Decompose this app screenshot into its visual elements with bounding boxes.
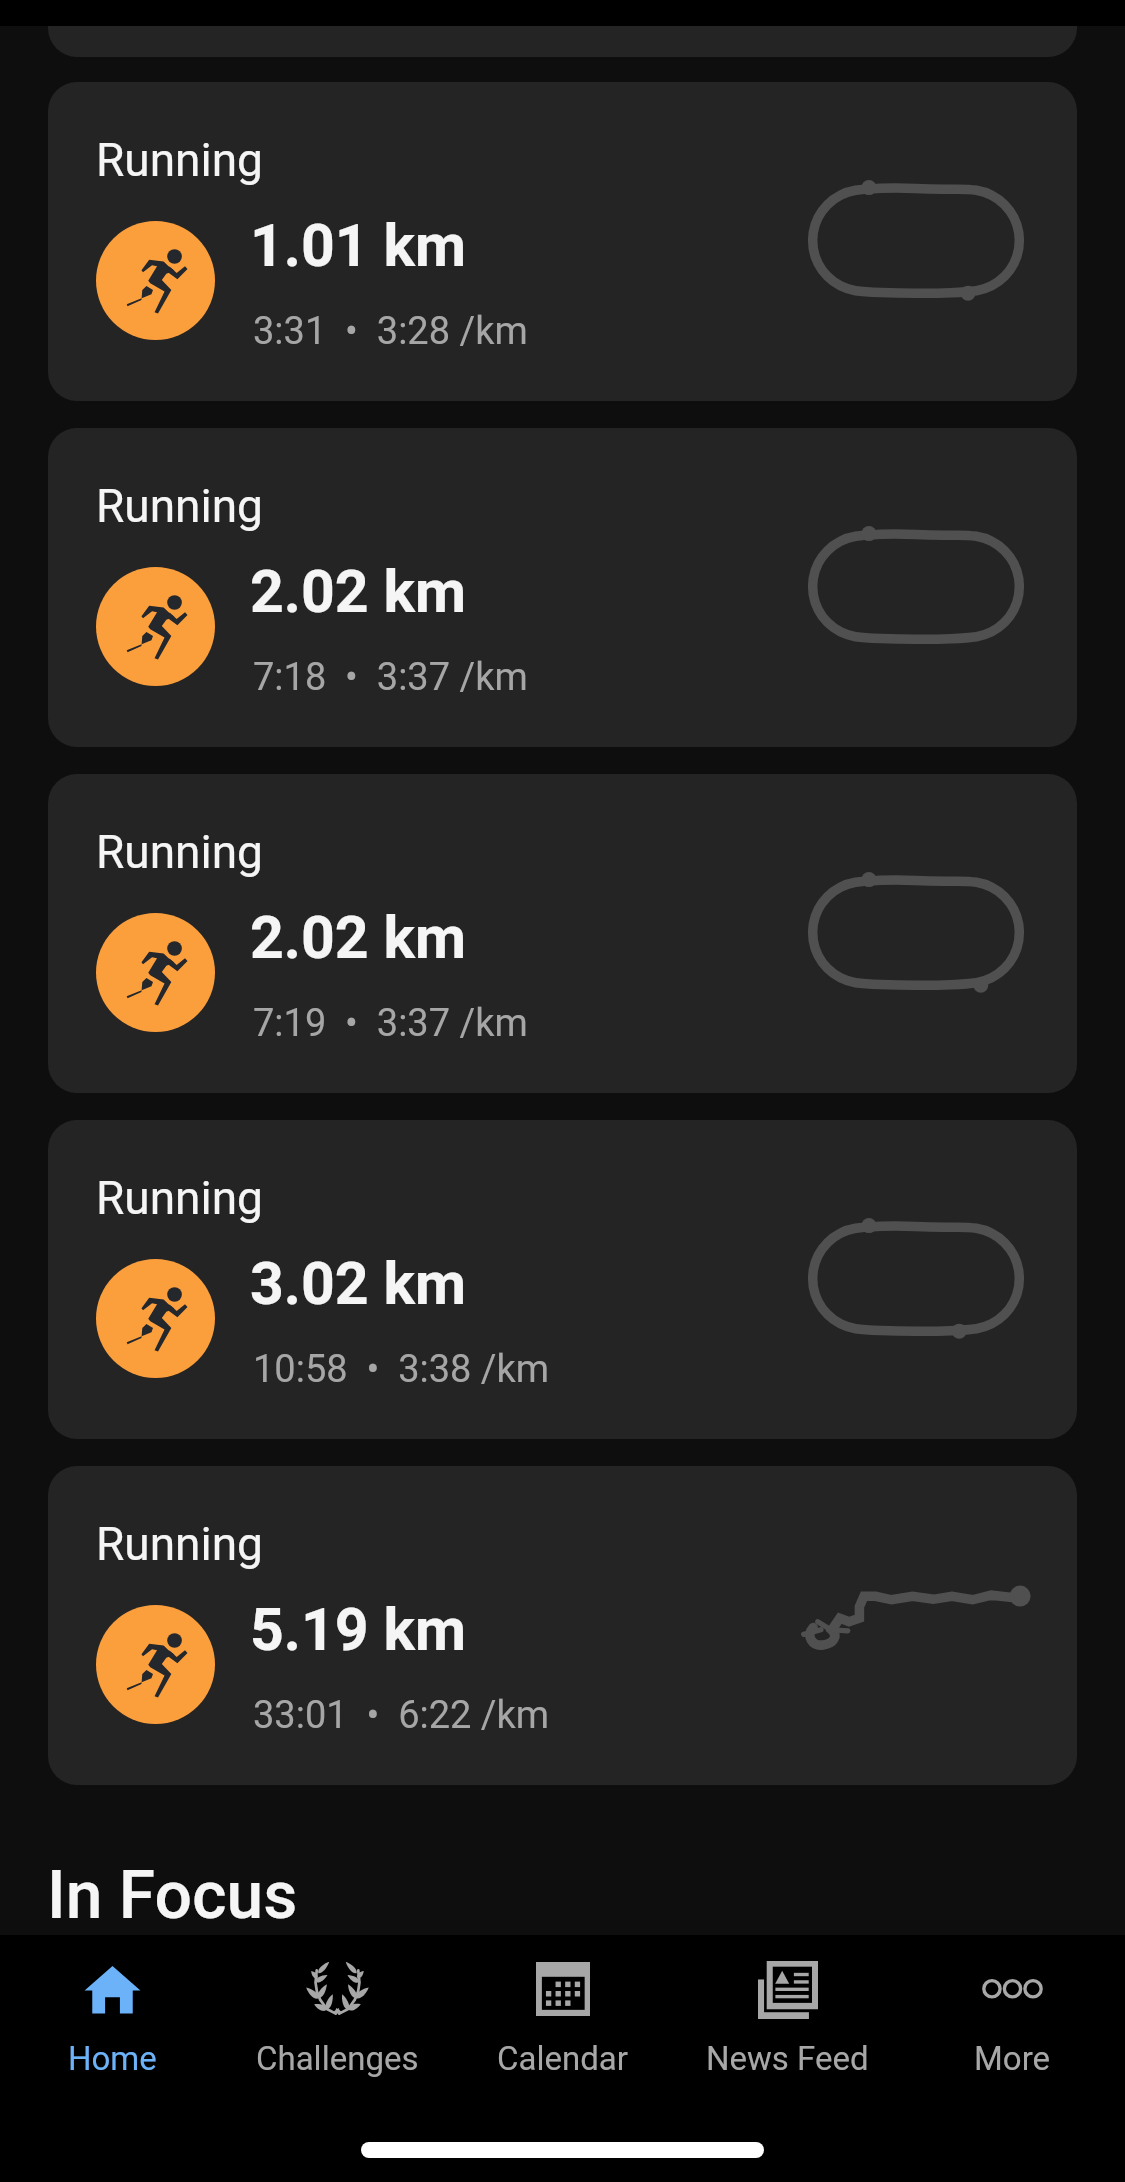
staticText: Running <box>96 133 263 187</box>
button[interactable]: Running <box>48 774 1077 1093</box>
staticText: Home <box>68 2039 157 2078</box>
staticText: 10:58 • 3:38 /km <box>253 1347 550 1392</box>
staticText: News Feed <box>706 2039 869 2078</box>
staticText: Running <box>96 479 263 533</box>
other: Home <box>84 1963 141 2015</box>
staticText: Calendar <box>497 2039 628 2078</box>
other: Challenges <box>308 1961 367 2015</box>
staticText: Running <box>96 825 263 879</box>
staticText: 5.19 km <box>250 1595 467 1664</box>
staticText: 2.02 km <box>250 903 467 972</box>
staticText: In Focus <box>47 1857 298 1934</box>
button[interactable]: News Feed <box>675 1935 900 2095</box>
button[interactable]: Running <box>48 82 1077 401</box>
other: News Feed <box>758 1961 818 2019</box>
staticText: 3.02 km <box>250 1249 467 1318</box>
button[interactable]: Running <box>48 1466 1077 1785</box>
staticText: Running <box>96 1517 263 1571</box>
staticText: 7:19 • 3:37 /km <box>253 1001 528 1046</box>
button[interactable]: Running <box>48 1120 1077 1439</box>
staticText: 2.02 km <box>250 557 467 626</box>
staticText: 1.01 km <box>250 211 467 280</box>
staticText: More <box>974 2039 1051 2078</box>
button[interactable]: Challenges <box>225 1935 450 2095</box>
other: More <box>983 1963 1042 2015</box>
staticText: Challenges <box>256 2039 419 2078</box>
staticText: 3:31 • 3:28 /km <box>253 309 528 354</box>
other: Calendar <box>536 1962 590 2016</box>
button[interactable]: Home <box>0 1935 225 2095</box>
staticText: 7:18 • 3:37 /km <box>253 655 528 700</box>
button[interactable]: Calendar <box>450 1935 675 2095</box>
staticText: Running <box>96 1171 263 1225</box>
button[interactable]: More <box>900 1935 1125 2095</box>
button[interactable]: Running <box>48 428 1077 747</box>
button[interactable] <box>48 0 1077 57</box>
staticText: 33:01 • 6:22 /km <box>253 1693 550 1738</box>
